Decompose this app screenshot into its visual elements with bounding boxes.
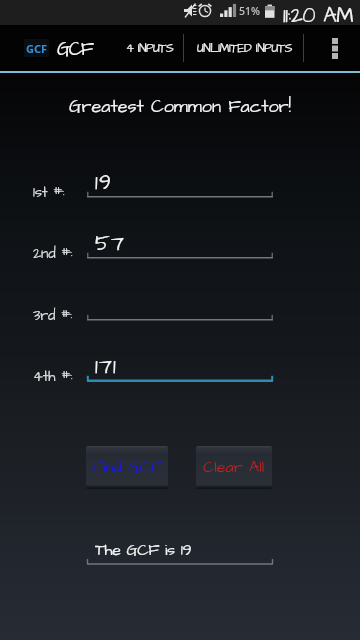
staticText: GCF — [57, 36, 93, 62]
button[interactable]: Clear All — [196, 446, 272, 489]
staticText: 2nd #: — [33, 244, 73, 264]
staticText: 19 — [95, 168, 113, 197]
button[interactable]: More options — [318, 31, 352, 65]
staticText: The GCF is 19 — [95, 539, 192, 561]
staticText: Clear All — [203, 456, 265, 478]
button[interactable]: UNLIMITED INPUTS — [188, 30, 302, 66]
button[interactable]: Find GCF — [86, 446, 168, 489]
staticText: 171 — [95, 352, 117, 381]
staticText: 4th #: — [33, 367, 73, 387]
button[interactable]: App icon — [24, 39, 49, 57]
staticText: 1st #: — [33, 183, 65, 203]
staticText: 51% — [239, 4, 260, 18]
staticText: GCF — [26, 41, 48, 56]
staticText: Greatest Common Factor! — [0, 94, 360, 119]
staticText: 3rd #: — [33, 306, 73, 326]
staticText: 4 INPUTS — [126, 40, 174, 57]
staticText: UNLIMITED INPUTS — [197, 40, 293, 57]
button[interactable]: 4 INPUTS — [119, 30, 181, 66]
staticText: 11:20 AM — [283, 1, 354, 26]
staticText: 57 — [95, 229, 126, 258]
staticText: Find GCF — [92, 456, 162, 478]
